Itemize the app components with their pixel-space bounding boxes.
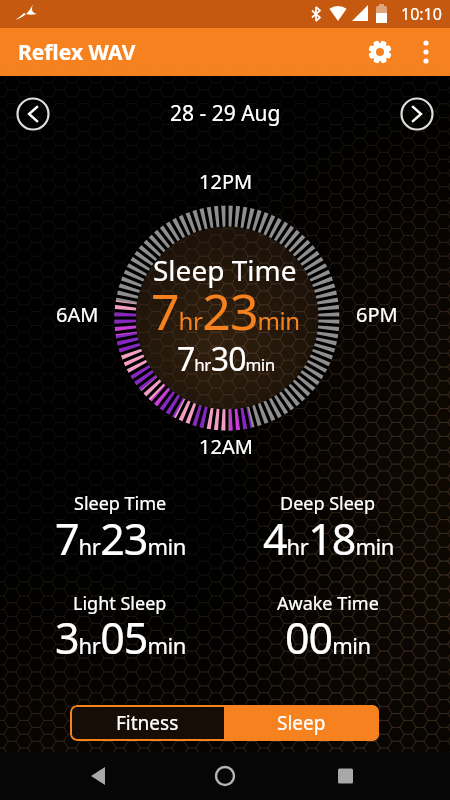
staticText: 3hr05min <box>55 608 186 664</box>
staticText: 7hr23min <box>55 509 186 565</box>
staticText: Sleep <box>277 710 326 736</box>
button[interactable] <box>0 752 150 800</box>
button[interactable]: Sleep <box>224 705 379 741</box>
staticText: 6PM <box>356 301 398 328</box>
staticText: 7hr23min <box>151 277 300 339</box>
staticText: 12PM <box>199 168 253 195</box>
button[interactable]: Fitness <box>70 705 224 741</box>
staticText: 10:10 <box>401 3 442 25</box>
staticText: 12AM <box>199 433 253 460</box>
staticText: Deep Sleep <box>280 491 376 516</box>
staticText: 28 - 29 Aug <box>170 99 281 128</box>
button[interactable] <box>150 752 300 800</box>
staticText: Sleep Time <box>74 491 167 516</box>
staticText: Sleep Time <box>153 251 297 289</box>
staticText: 4hr18min <box>263 509 394 565</box>
staticText: Light Sleep <box>73 591 167 616</box>
staticText: Reflex WAV <box>18 38 136 67</box>
staticText: 7hr30min <box>177 337 275 379</box>
staticText: Fitness <box>116 710 179 736</box>
staticText: 6AM <box>56 301 99 328</box>
button[interactable] <box>300 752 450 800</box>
button[interactable] <box>13 94 53 134</box>
staticText: 00min <box>285 608 371 664</box>
button[interactable] <box>397 94 437 134</box>
button[interactable] <box>362 34 398 70</box>
staticText: Awake Time <box>277 591 379 616</box>
button[interactable] <box>412 38 440 66</box>
